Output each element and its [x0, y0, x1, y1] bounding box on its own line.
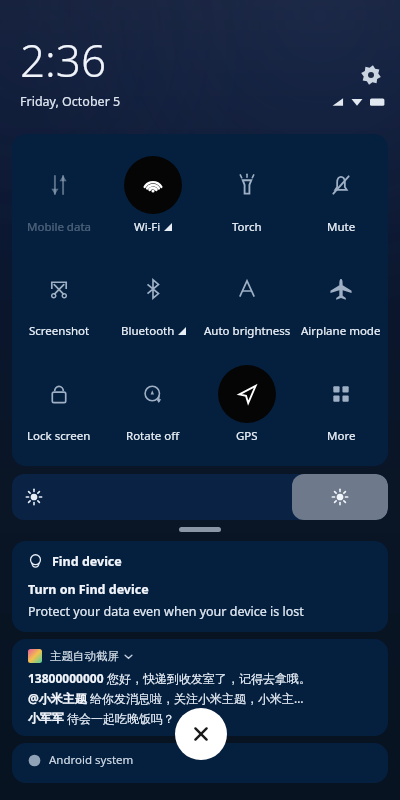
- staticText: 您好，快递到收发室了，记得去拿哦。: [104, 670, 312, 686]
- button[interactable]: Clear all notifications: [175, 708, 227, 760]
- button[interactable]: Settings: [354, 58, 388, 92]
- button[interactable]: Screenshot: [12, 251, 106, 351]
- staticText: Screenshot: [29, 323, 90, 339]
- staticText: 给你发消息啦，关注小米主题，小米主…: [87, 690, 304, 706]
- staticText: Auto brightness: [204, 323, 291, 339]
- button[interactable]: Auto brightness: [200, 251, 294, 351]
- staticText: Wi-Fi: [134, 219, 161, 235]
- button[interactable]: 主题自动截屏: [12, 639, 388, 736]
- staticText: 13800000000: [28, 670, 104, 686]
- staticText: Android system: [49, 752, 134, 768]
- staticText: Torch: [232, 219, 262, 235]
- button[interactable]: Mobile data: [12, 147, 106, 247]
- button[interactable]: Wi-Fi: [106, 147, 200, 247]
- button[interactable]: Bluetooth: [106, 251, 200, 351]
- staticText: Friday, October 5: [20, 93, 121, 110]
- staticText: @小米主题: [28, 690, 87, 706]
- staticText: Airplane mode: [301, 323, 381, 339]
- staticText: Turn on Find device: [28, 581, 149, 598]
- staticText: Bluetooth: [121, 323, 175, 339]
- staticText: GPS: [236, 428, 258, 444]
- staticText: Mobile data: [27, 219, 91, 235]
- button[interactable]: More: [294, 356, 388, 456]
- staticText: Mute: [327, 219, 356, 235]
- button[interactable]: Torch: [200, 147, 294, 247]
- staticText: 待会一起吃晚饭吗？: [64, 710, 176, 726]
- button[interactable]: Airplane mode: [294, 251, 388, 351]
- staticText: Find device: [52, 553, 122, 570]
- button[interactable]: Brightness: [12, 474, 388, 520]
- staticText: Rotate off: [126, 428, 180, 444]
- staticText: 小军军: [28, 710, 64, 725]
- staticText: More: [327, 428, 356, 444]
- button[interactable]: GPS: [200, 356, 294, 456]
- button[interactable]: Android system: [12, 743, 388, 783]
- staticText: 主题自动截屏: [50, 649, 119, 663]
- button[interactable]: Mute: [294, 147, 388, 247]
- button[interactable]: Rotate off: [106, 356, 200, 456]
- button[interactable]: Find device: [12, 541, 388, 632]
- staticText: Protect your data even when your device …: [28, 603, 304, 620]
- button[interactable]: Lock screen: [12, 356, 106, 456]
- staticText: 2:36: [20, 30, 107, 90]
- staticText: Lock screen: [27, 428, 91, 444]
